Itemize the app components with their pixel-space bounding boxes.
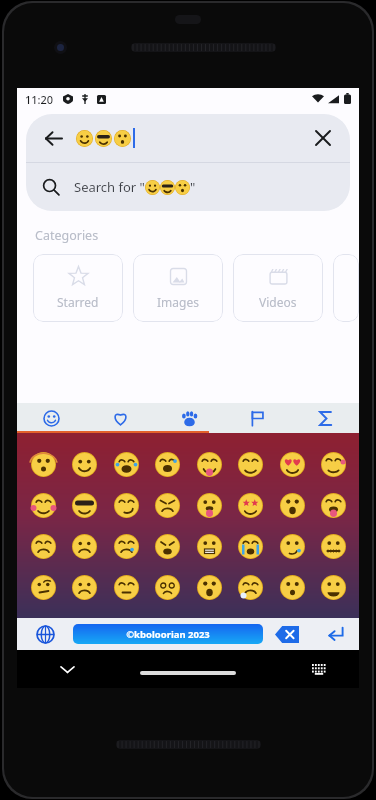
button[interactable]: Emoji 20 (193, 530, 225, 562)
button[interactable]: Emoji 8 (27, 489, 59, 521)
staticText: Images (157, 294, 199, 310)
button[interactable]: Emoji 0 (27, 448, 59, 480)
button[interactable]: Clear (310, 125, 336, 151)
button[interactable]: Emoji 10 (110, 489, 142, 521)
button[interactable]: Smileys (17, 403, 86, 433)
button[interactable]: Emoji 7 (317, 448, 349, 480)
button[interactable]: Emoji 3 (151, 448, 183, 480)
button[interactable]: Emoji 12 (193, 489, 225, 521)
button[interactable]: Emoji 27 (151, 571, 183, 603)
staticText: Videos (259, 294, 297, 310)
button[interactable]: Emoji 25 (68, 571, 100, 603)
button[interactable]: Emoji 31 (317, 571, 349, 603)
staticText: " (190, 178, 196, 196)
button[interactable]: Back (40, 125, 66, 151)
button[interactable]: Emoji 11 (151, 489, 183, 521)
button[interactable]: Emoji 22 (276, 530, 308, 562)
button[interactable]: Emoji 1 (68, 448, 100, 480)
button[interactable]: Emoji 26 (110, 571, 142, 603)
button[interactable]: ©kboloorian 2023 (73, 624, 263, 644)
button[interactable]: Search for " (26, 163, 350, 211)
staticText: Categories (35, 227, 99, 244)
staticText: 11:20 (25, 92, 54, 107)
button[interactable]: Emoji 30 (276, 571, 308, 603)
button[interactable]: Emoji 9 (68, 489, 100, 521)
button[interactable]: Emoji 6 (276, 448, 308, 480)
button[interactable]: Emoji 17 (68, 530, 100, 562)
button[interactable]: Emoji 2 (110, 448, 142, 480)
button[interactable]: Emoji 21 (234, 530, 266, 562)
button[interactable]: Change keyboard (17, 618, 73, 650)
button[interactable]: Emoji 15 (317, 489, 349, 521)
button[interactable]: Delete (263, 618, 311, 650)
button[interactable]: Animals (155, 403, 223, 433)
button[interactable]: Back (26, 114, 350, 162)
button[interactable]: Emoji 24 (27, 571, 59, 603)
button[interactable]: Emoji 23 (317, 530, 349, 562)
button[interactable]: Flags (223, 403, 291, 433)
button[interactable] (333, 254, 359, 322)
button[interactable]: Emoji 29 (234, 571, 266, 603)
staticText: Search for " (74, 178, 145, 196)
button[interactable]: Emoji 28 (193, 571, 225, 603)
button[interactable]: Emoji 19 (151, 530, 183, 562)
button[interactable]: Emoji 18 (110, 530, 142, 562)
button[interactable]: Switch input method (307, 657, 331, 681)
staticText: Starred (57, 294, 99, 310)
button[interactable]: Starred (33, 254, 123, 322)
staticText: ©kboloorian 2023 (126, 628, 210, 641)
button[interactable]: Emoji 13 (234, 489, 266, 521)
button[interactable]: Enter (311, 618, 359, 650)
button[interactable]: Images (133, 254, 223, 322)
button[interactable]: Emoji 14 (276, 489, 308, 521)
button[interactable]: Emoji 5 (234, 448, 266, 480)
button[interactable]: Hide keyboard (55, 657, 79, 681)
button[interactable]: Emoji 4 (193, 448, 225, 480)
button[interactable]: Symbols (291, 403, 359, 433)
button[interactable]: Videos (233, 254, 323, 322)
button[interactable]: Emoji 16 (27, 530, 59, 562)
button[interactable]: Favorites (86, 403, 155, 433)
button[interactable]: Home (140, 671, 236, 675)
